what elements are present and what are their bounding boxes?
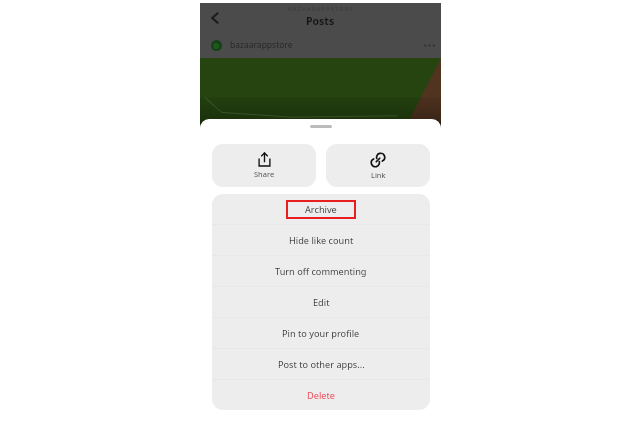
button[interactable]: Back	[207, 10, 223, 26]
button[interactable]: Edit	[212, 287, 430, 317]
button[interactable]: Turn off commenting	[212, 256, 430, 286]
button[interactable]: More options	[423, 39, 436, 52]
staticText: bazaarappstore	[230, 39, 293, 51]
button[interactable]: Delete	[212, 380, 430, 410]
staticText: Post to other apps...	[278, 358, 365, 371]
button[interactable]: Post to other apps...	[212, 349, 430, 379]
staticText: Delete	[307, 389, 335, 402]
staticText: Share	[254, 169, 275, 179]
button[interactable]: Archive	[212, 194, 430, 224]
staticText: Turn off commenting	[275, 265, 367, 278]
staticText: Pin to your profile	[282, 327, 360, 340]
staticText: Posts	[306, 14, 335, 28]
button[interactable]: Hide like count	[212, 225, 430, 255]
button[interactable]: Pin to your profile	[212, 318, 430, 348]
staticText: Hide like count	[289, 234, 354, 247]
button[interactable]: Link	[326, 144, 430, 187]
staticText: Link	[371, 170, 386, 180]
staticText: BAZAARAPPSTORE	[288, 5, 354, 13]
staticText: Edit	[313, 296, 330, 309]
button[interactable]: Share	[212, 144, 316, 187]
staticText: Archive	[305, 203, 337, 216]
